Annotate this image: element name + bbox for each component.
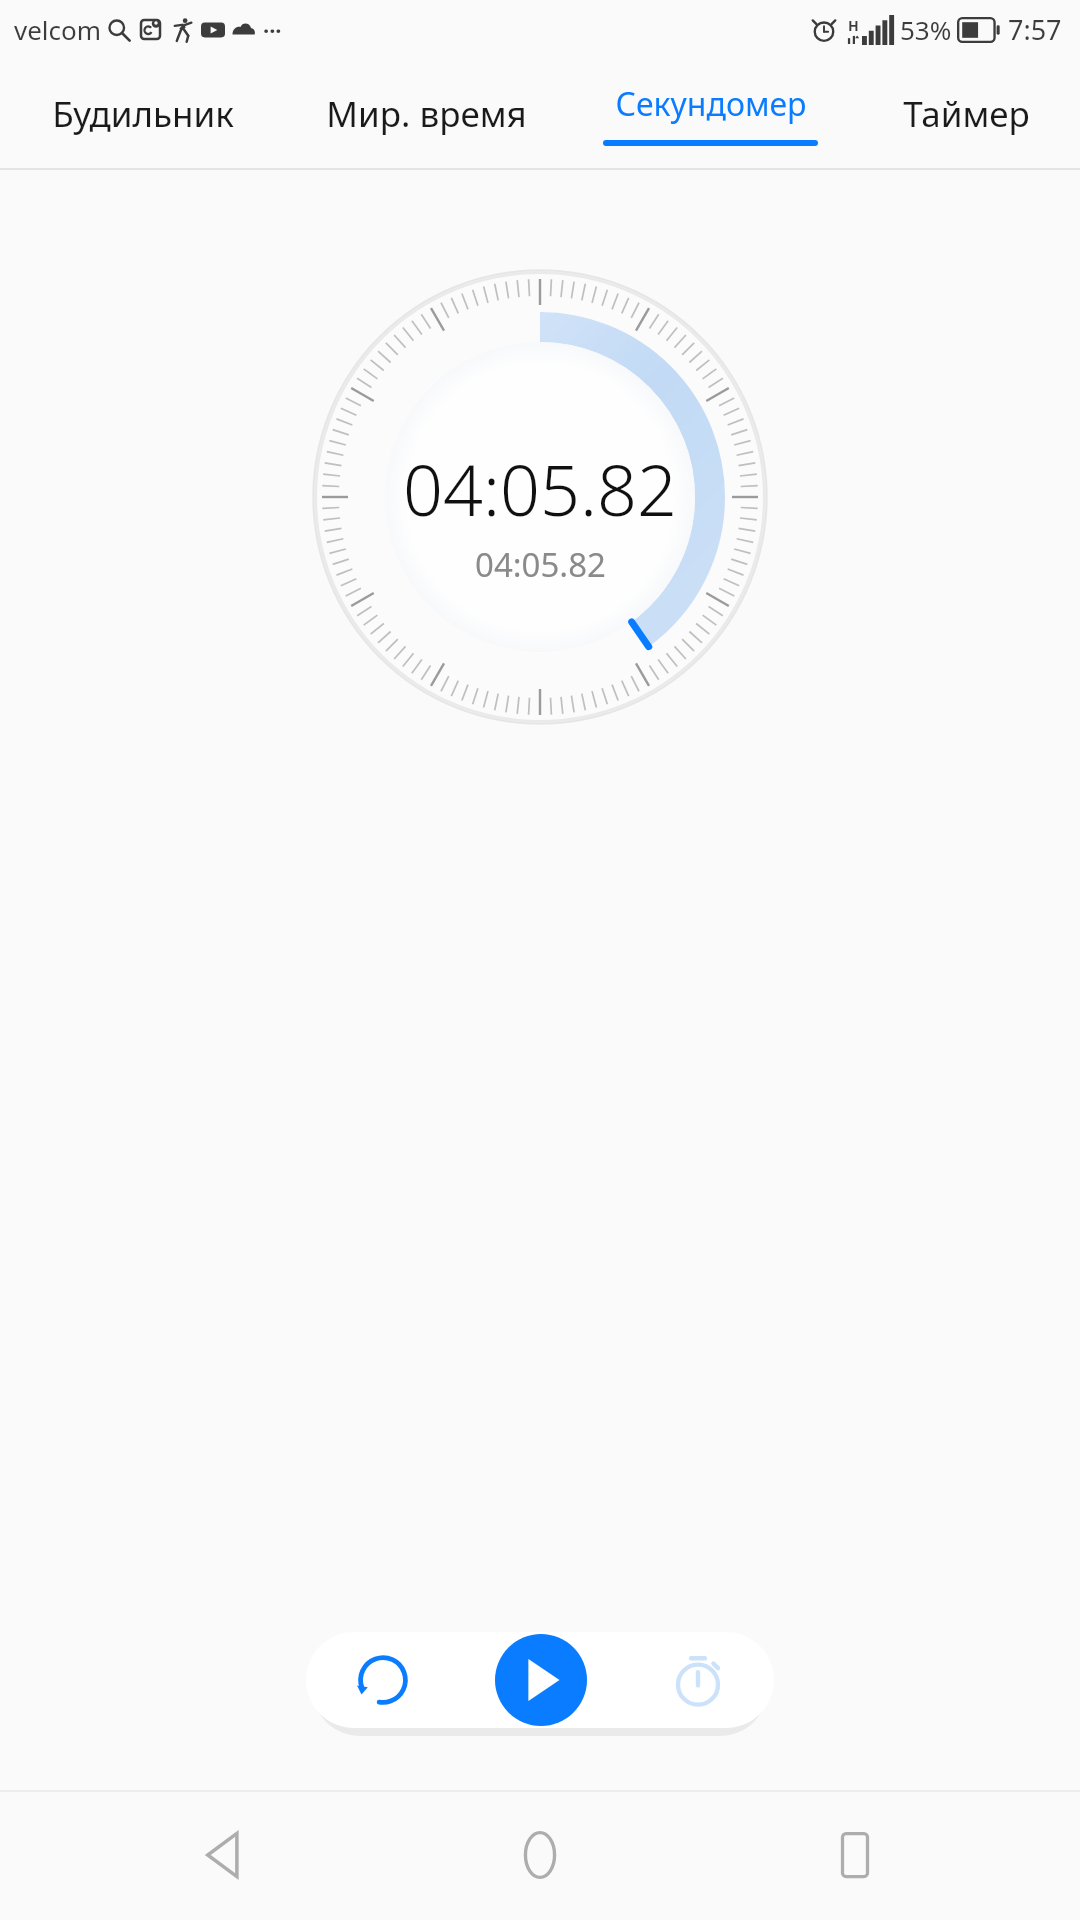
button[interactable]: Секундомер: [567, 58, 853, 170]
staticText: 04:05.82: [475, 542, 606, 587]
button[interactable]: Круг: [621, 1632, 774, 1728]
button[interactable]: Сброс: [306, 1632, 460, 1728]
button[interactable]: Будильник: [0, 58, 286, 170]
button[interactable]: Обзор: [800, 1800, 910, 1910]
staticText: velcom: [14, 12, 102, 47]
button[interactable]: Таймер: [853, 58, 1080, 170]
button[interactable]: Назад: [170, 1800, 280, 1910]
staticText: Будильник: [52, 90, 234, 138]
staticText: 53%: [900, 12, 952, 47]
button[interactable]: Главный экран: [485, 1800, 595, 1910]
button[interactable]: Запуск: [460, 1632, 621, 1728]
staticText: Мир. время: [326, 90, 527, 138]
staticText: Секундомер: [615, 82, 807, 126]
staticText: ···: [263, 15, 282, 45]
staticText: 04:05.82: [403, 441, 677, 536]
button[interactable]: Мир. время: [286, 58, 567, 170]
staticText: H: [848, 16, 859, 35]
staticText: Таймер: [903, 90, 1030, 138]
staticText: 7:57: [1008, 11, 1062, 48]
